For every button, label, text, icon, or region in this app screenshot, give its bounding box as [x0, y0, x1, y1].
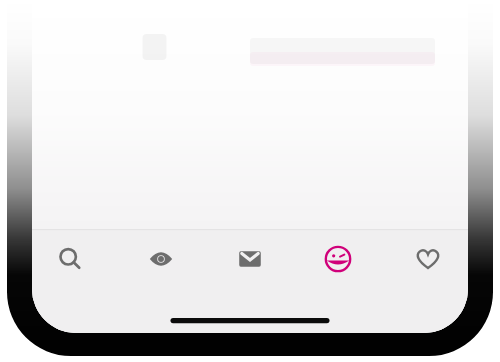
- button[interactable]: Messages: [223, 233, 277, 285]
- button[interactable]: Views: [134, 233, 188, 285]
- button[interactable]: Favourites: [401, 233, 455, 285]
- button[interactable]: Profile: [311, 233, 365, 285]
- button[interactable]: Search: [43, 233, 97, 285]
